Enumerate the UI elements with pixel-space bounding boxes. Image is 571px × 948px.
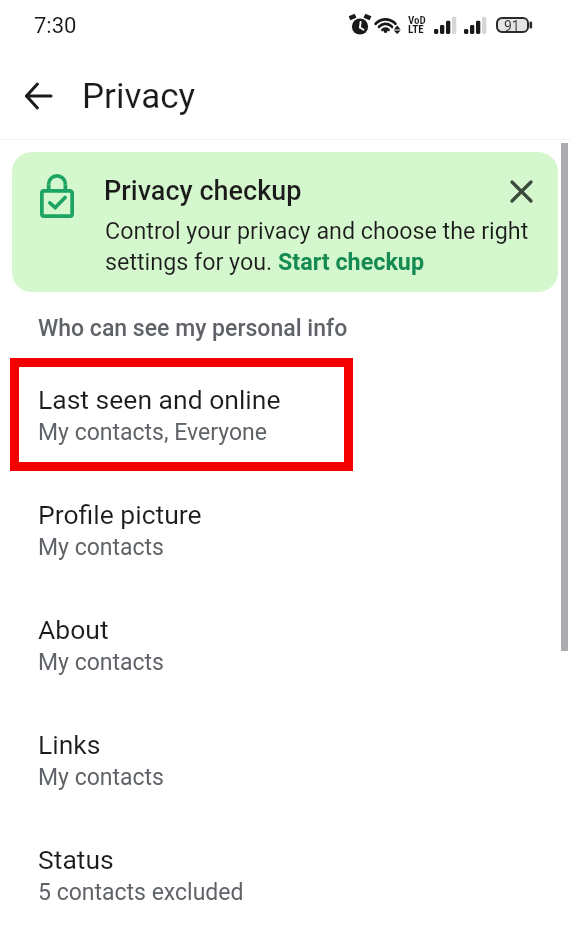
staticText: 7:30 bbox=[34, 13, 77, 39]
button[interactable]: Links bbox=[0, 697, 571, 812]
staticText: Profile picture bbox=[38, 499, 202, 530]
button[interactable]: Status bbox=[0, 812, 571, 927]
staticText: My contacts bbox=[38, 764, 164, 791]
staticText: Last seen and online bbox=[38, 384, 281, 415]
staticText: Who can see my personal info bbox=[38, 315, 348, 342]
staticText: Links bbox=[38, 729, 101, 760]
staticText: Control your privacy and choose the righ… bbox=[105, 217, 557, 276]
button[interactable]: Dismiss privacy checkup bbox=[499, 169, 544, 214]
button[interactable]: Last seen and online bbox=[0, 352, 571, 467]
staticText: My contacts, Everyone bbox=[38, 419, 267, 446]
staticText: About bbox=[38, 614, 109, 645]
staticText: VoD bbox=[408, 14, 426, 27]
staticText: LTE bbox=[408, 23, 424, 36]
button[interactable]: Privacy checkup bbox=[12, 152, 558, 292]
staticText: Status bbox=[38, 844, 114, 875]
staticText: 91 bbox=[504, 18, 520, 34]
button[interactable]: Navigate back bbox=[13, 71, 63, 121]
staticText: Privacy checkup bbox=[104, 175, 302, 207]
staticText: My contacts bbox=[38, 534, 164, 561]
staticText: My contacts bbox=[38, 649, 164, 676]
button[interactable]: Profile picture bbox=[0, 467, 571, 582]
button[interactable]: About bbox=[0, 582, 571, 697]
staticText: 5 contacts excluded bbox=[38, 879, 244, 906]
staticText: Privacy bbox=[82, 76, 196, 117]
